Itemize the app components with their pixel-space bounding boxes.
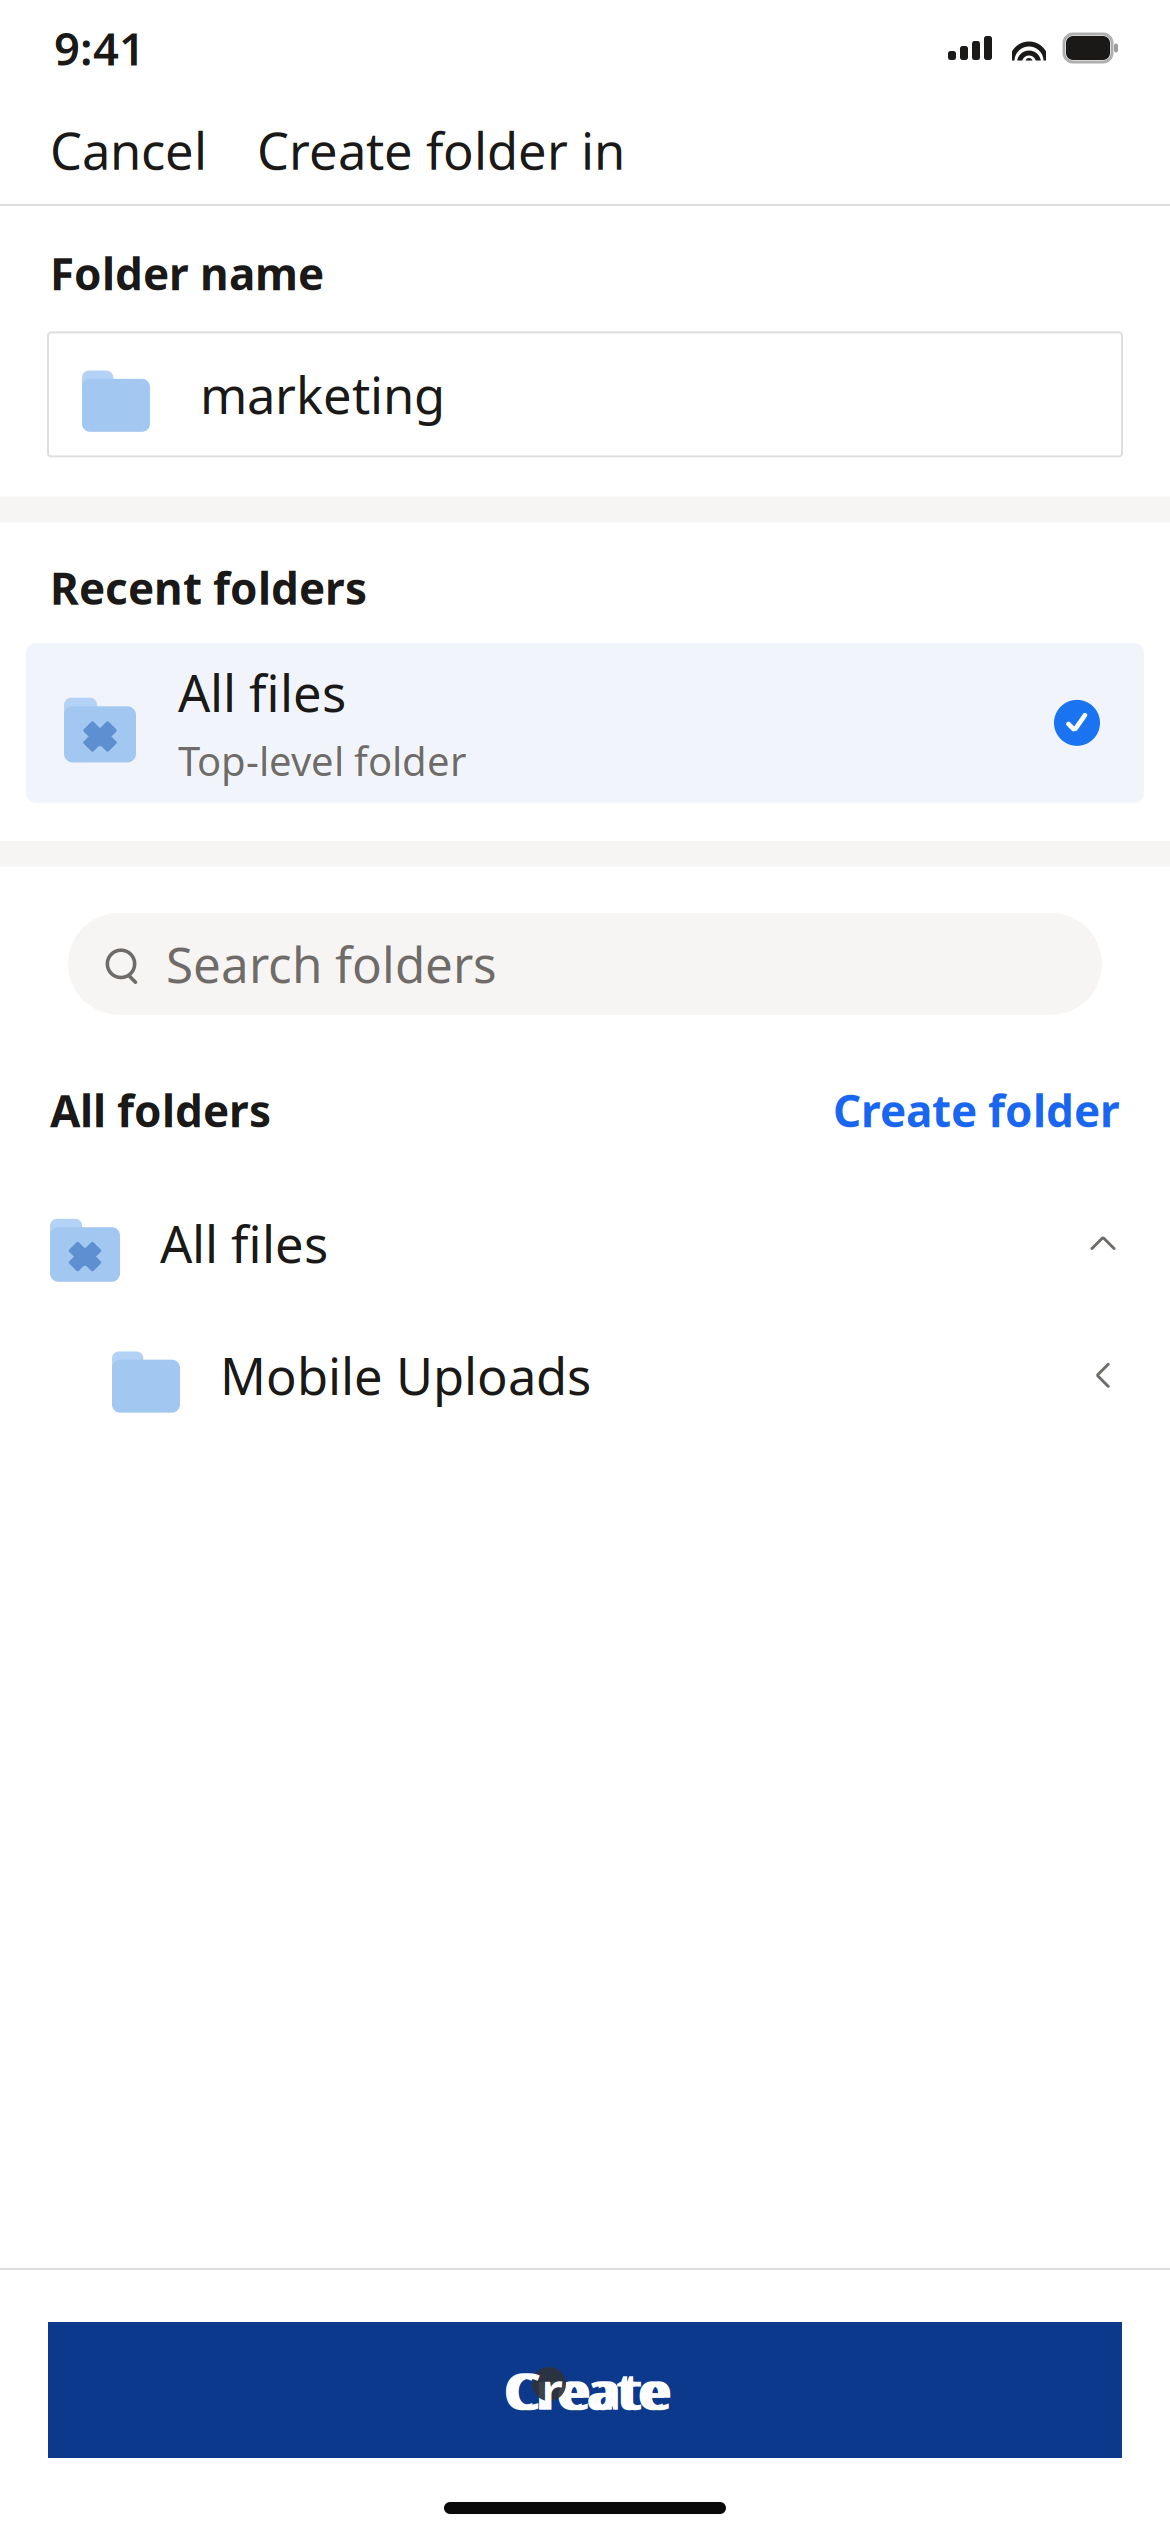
staticText: Create folder in bbox=[257, 116, 625, 184]
staticText: Recent folders bbox=[50, 558, 367, 617]
staticText: Create bbox=[509, 2356, 673, 2424]
staticText: Cancel bbox=[50, 116, 207, 184]
staticText: marketing bbox=[200, 361, 445, 428]
staticText: Top-level folder bbox=[178, 734, 467, 787]
button[interactable]: All files bbox=[26, 643, 1144, 803]
staticText: Create folder bbox=[833, 1081, 1120, 1139]
staticText: Search folders bbox=[166, 931, 497, 997]
staticText: 9:41 bbox=[54, 18, 145, 78]
staticText: All files bbox=[178, 659, 346, 726]
button[interactable]: marketing bbox=[48, 332, 1122, 456]
staticText: Folder name bbox=[50, 244, 324, 302]
button[interactable]: Create bbox=[48, 2322, 1122, 2458]
button[interactable]: Mobile Uploads, open bbox=[0, 1309, 1170, 1441]
staticText: All folders bbox=[50, 1081, 271, 1139]
button[interactable]: All files, collapse bbox=[0, 1177, 1170, 1309]
button[interactable]: Create folder bbox=[833, 1069, 1120, 1151]
staticText: Mobile Uploads bbox=[220, 1342, 591, 1409]
button[interactable]: Cancel bbox=[0, 96, 257, 204]
button[interactable]: Search folders bbox=[68, 913, 1102, 1015]
staticText: Create bbox=[503, 2356, 667, 2424]
staticText: All files bbox=[160, 1210, 328, 1277]
